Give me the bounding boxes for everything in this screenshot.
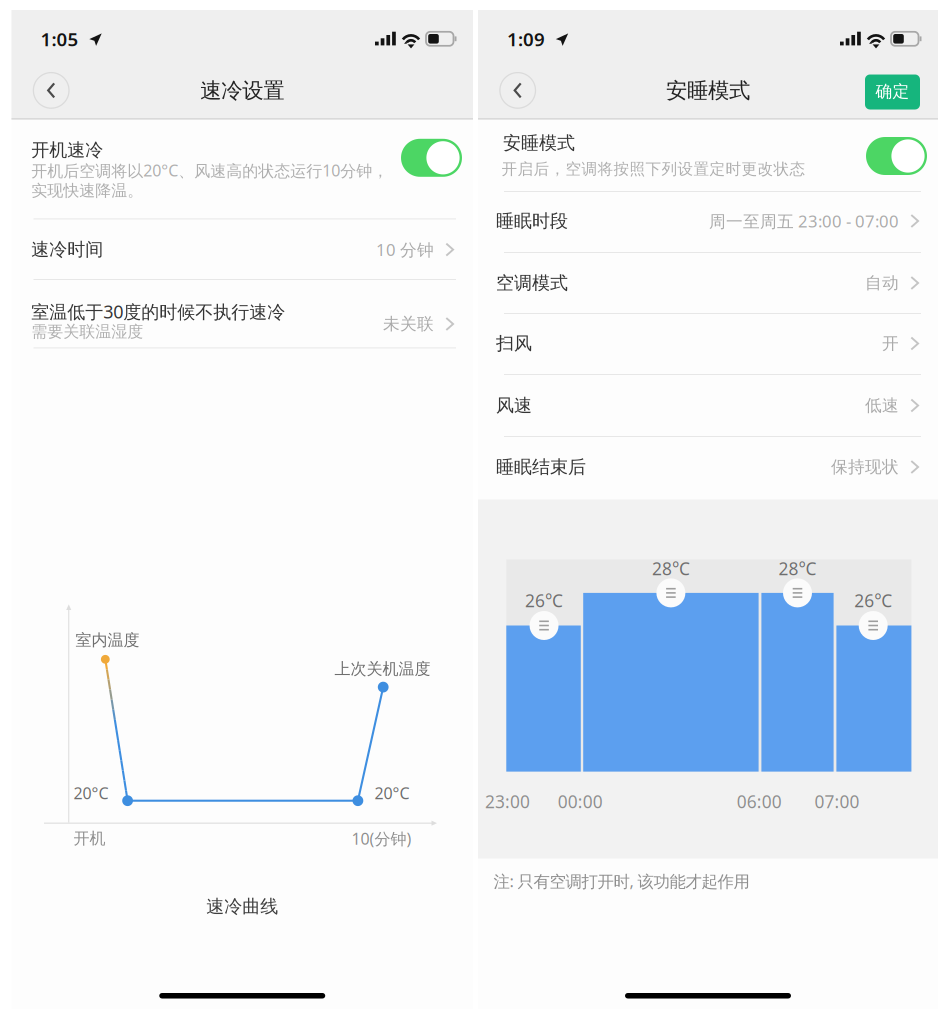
button[interactable]: 睡眠结束后 保持现状 [478, 437, 938, 499]
staticText: 上次关机温度 [334, 659, 430, 679]
staticText: 速冷设置 [200, 77, 284, 104]
staticText: 保持现状 [831, 456, 899, 477]
button[interactable]: 速冷时间 10 分钟 [11, 219, 473, 279]
button[interactable]: 扫风 开 [478, 314, 938, 374]
button[interactable]: 风速 低速 [478, 375, 938, 436]
staticText: 1:09 [507, 26, 545, 52]
button[interactable]: Adjust 26°C [856, 608, 890, 642]
staticText: 自动 [865, 272, 899, 293]
staticText: 扫风 [496, 332, 532, 355]
button[interactable]: Back [491, 70, 540, 115]
staticText: 10 分钟 [376, 238, 434, 261]
staticText: 开启后，空调将按照下列设置定时更改状态 [502, 159, 806, 179]
staticText: 实现快速降温。 [31, 180, 143, 201]
staticText: 10(分钟) [351, 828, 411, 849]
staticText: 23:00 [485, 790, 530, 813]
button[interactable]: Back [24, 70, 73, 115]
staticText: 安睡模式 [666, 77, 750, 104]
staticText: 空调模式 [496, 272, 568, 294]
button[interactable]: 空调模式 自动 [478, 253, 938, 313]
staticText: 速冷曲线 [206, 895, 278, 918]
button[interactable]: Adjust 28°C [654, 576, 688, 610]
staticText: 睡眠结束后 [496, 456, 586, 478]
staticText: 室内温度 [76, 630, 140, 650]
button[interactable]: 确定 [865, 74, 920, 109]
staticText: 20°C [375, 782, 410, 804]
button[interactable]: Adjust 28°C [780, 576, 814, 610]
staticText: 需要关联温湿度 [31, 321, 143, 342]
staticText: 06:00 [737, 790, 782, 813]
staticText: 07:00 [814, 790, 859, 813]
button[interactable]: 开机速冷 [11, 119, 473, 218]
staticText: 开机速冷 [31, 139, 103, 161]
staticText: 26°C [854, 589, 892, 612]
staticText: 安睡模式 [503, 132, 575, 154]
staticText: 注: 只有空调打开时, 该功能才起作用 [493, 870, 749, 892]
staticText: 室温低于30度的时候不执行速冷 [31, 299, 285, 324]
staticText: 00:00 [558, 790, 603, 813]
staticText: 低速 [865, 395, 899, 416]
staticText: 26°C [525, 589, 563, 612]
staticText: 1:05 [40, 26, 78, 52]
staticText: 开机后空调将以20°C、风速高的状态运行10分钟， [31, 159, 388, 181]
staticText: 开 [882, 333, 899, 354]
button[interactable]: Adjust 26°C [527, 608, 561, 642]
button[interactable]: 室温低于30度的时候不执行速冷 未关联 [11, 280, 473, 347]
staticText: 周一至周五 23:00 - 07:00 [709, 210, 899, 232]
staticText: 睡眠时段 [496, 210, 568, 232]
staticText: 20°C [74, 782, 109, 804]
staticText: 确定 [875, 81, 909, 102]
staticText: 28°C [652, 557, 690, 580]
staticText: 风速 [496, 394, 532, 417]
button[interactable]: 安睡模式 [478, 119, 938, 191]
staticText: 开机 [74, 828, 106, 849]
button[interactable]: 睡眠时段 周一至周五 23:00 - 07:00 [478, 192, 938, 252]
staticText: 速冷时间 [31, 238, 103, 261]
staticText: 28°C [778, 557, 816, 580]
staticText: 未关联 [383, 313, 434, 334]
